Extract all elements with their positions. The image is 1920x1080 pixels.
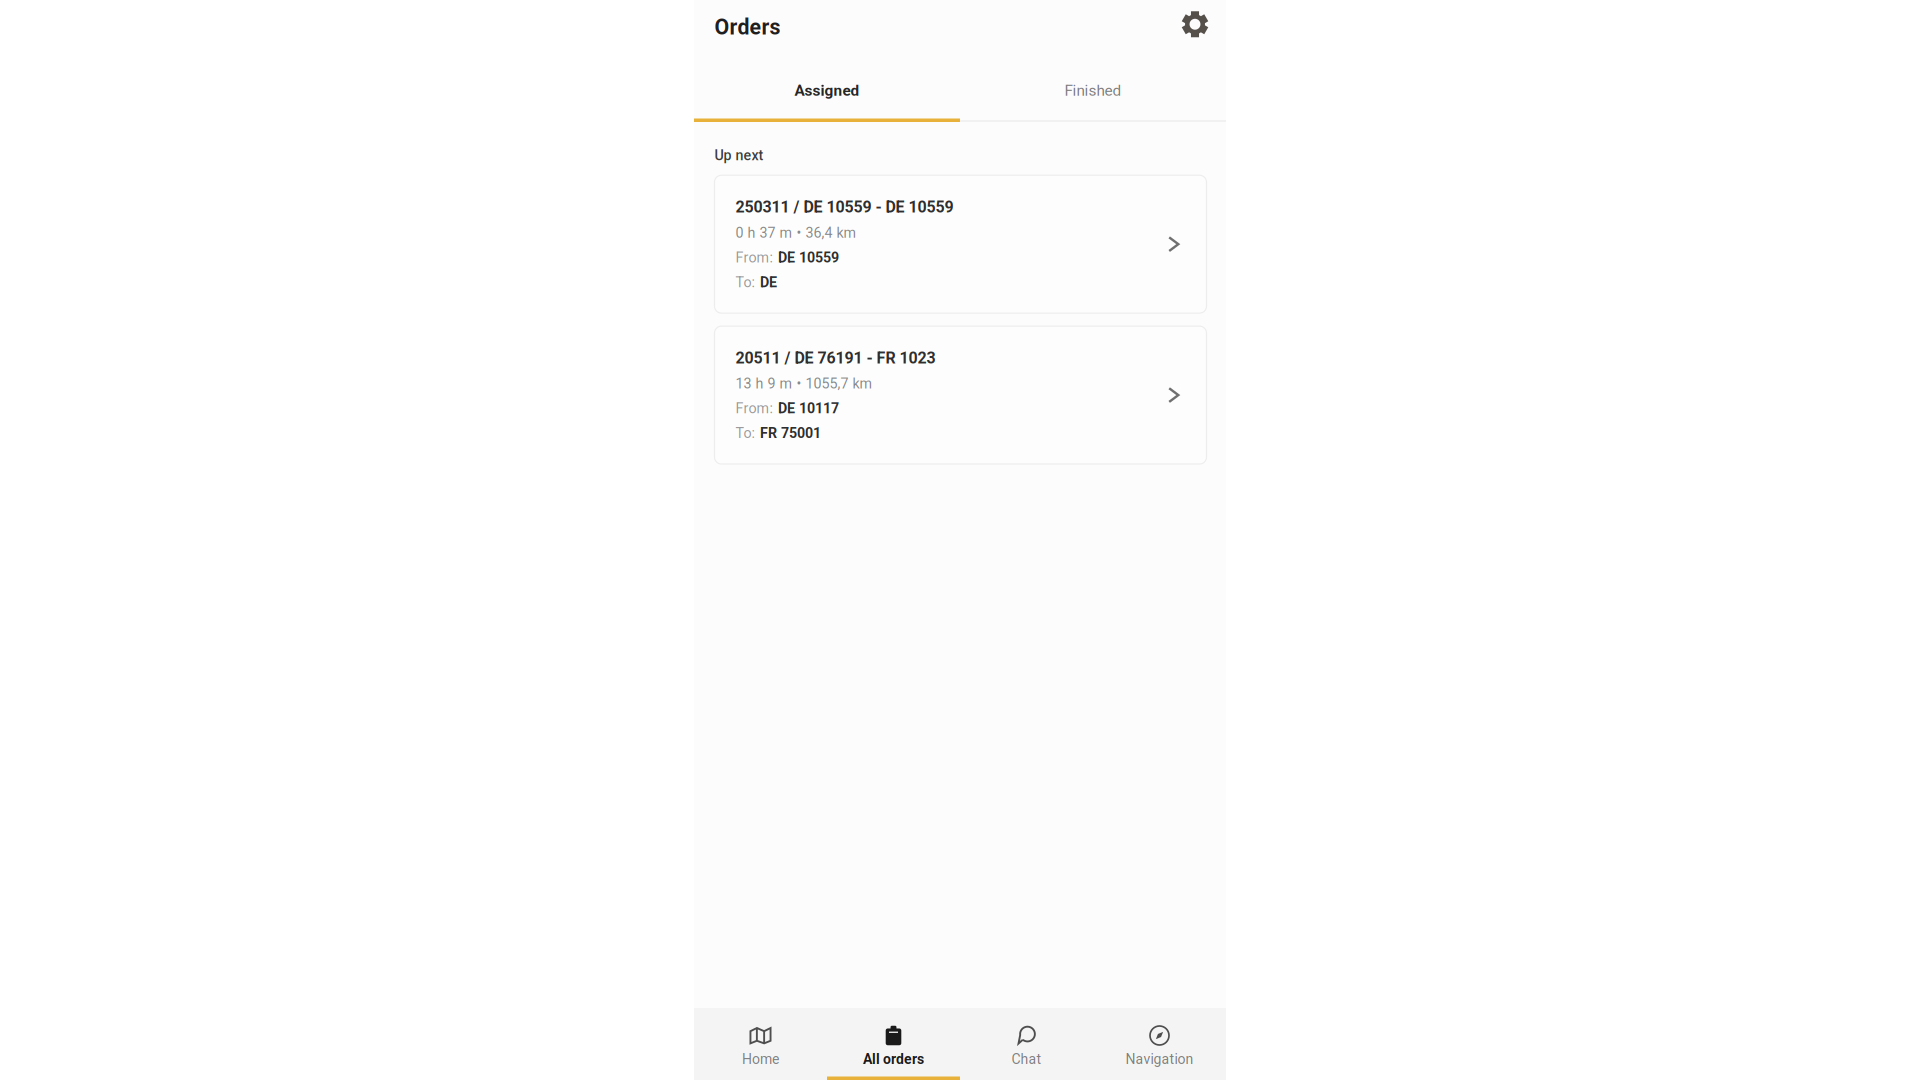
staticText: Chat: [1011, 1051, 1041, 1067]
staticText: Navigation: [1125, 1051, 1193, 1067]
staticText: Orders: [714, 15, 780, 40]
staticText: 0 h 37 m • 36,4 km: [735, 224, 856, 241]
staticText: Up next: [714, 147, 763, 164]
staticText: FR 75001: [760, 425, 821, 441]
staticText: 250311 / DE 10559 - DE 10559: [735, 198, 953, 216]
staticText: All orders: [863, 1051, 924, 1067]
staticText: To:: [735, 425, 754, 441]
button[interactable]: Settings: [1177, 7, 1213, 45]
staticText: Finished: [1064, 81, 1121, 99]
button[interactable]: Finished: [960, 52, 1226, 120]
staticText: From:: [735, 249, 772, 266]
staticText: To:: [735, 274, 754, 291]
button[interactable]: Home: [694, 1008, 827, 1080]
button[interactable]: Assigned: [694, 52, 960, 120]
button[interactable]: 250311 / DE 10559 - DE 10559: [714, 175, 1206, 313]
staticText: DE: [760, 274, 777, 291]
staticText: From:: [735, 400, 772, 417]
staticText: 20511 / DE 76191 - FR 1023: [735, 349, 935, 367]
button[interactable]: 20511 / DE 76191 - FR 1023: [714, 326, 1206, 464]
staticText: DE 10117: [778, 400, 839, 417]
button[interactable]: Chat: [960, 1008, 1093, 1080]
button[interactable]: All orders: [827, 1008, 960, 1080]
staticText: Assigned: [794, 81, 859, 99]
staticText: 13 h 9 m • 1055,7 km: [735, 375, 872, 392]
button[interactable]: Navigation: [1093, 1008, 1226, 1080]
staticText: Home: [742, 1051, 779, 1067]
staticText: DE 10559: [778, 249, 839, 266]
